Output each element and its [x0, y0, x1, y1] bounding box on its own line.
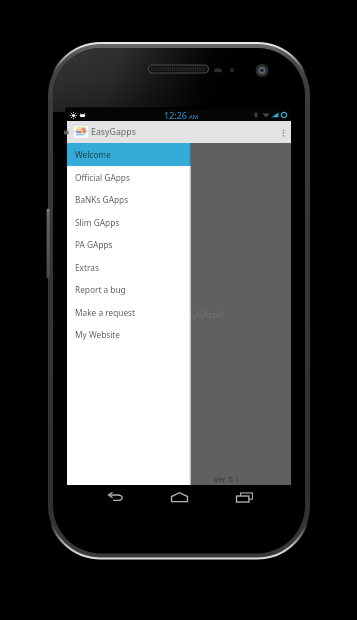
button[interactable]: My Website — [67, 323, 191, 346]
staticText: My Website — [75, 329, 121, 340]
staticText: AM — [189, 113, 199, 121]
staticText: EasyGapps — [91, 126, 136, 138]
staticText: Slim GApps — [75, 217, 120, 228]
staticText: Official GApps — [75, 172, 130, 183]
button[interactable]: Official GApps — [67, 166, 191, 188]
staticText: Welcome to EasyGApps! — [134, 309, 225, 320]
button[interactable]: More options — [276, 121, 291, 143]
staticText: Extras — [75, 262, 99, 273]
staticText: Welcome — [75, 149, 111, 160]
button[interactable]: Slim GApps — [67, 211, 191, 233]
staticText: PA GApps — [75, 239, 113, 250]
button[interactable]: Welcome — [67, 143, 191, 166]
staticText: 12:26 — [164, 109, 188, 121]
button[interactable]: Back — [98, 485, 132, 508]
button[interactable]: PA GApps — [67, 233, 191, 256]
staticText: Report a bug — [75, 284, 126, 295]
staticText: Ver. 0.1 — [214, 474, 240, 484]
staticText: Make a request — [75, 307, 136, 318]
button[interactable]: Home — [162, 485, 196, 508]
button[interactable]: Open navigation drawer — [67, 121, 73, 143]
button[interactable]: Report a bug — [67, 278, 191, 301]
button[interactable]: BaNKs GApps — [67, 188, 191, 211]
button[interactable]: Extras — [67, 256, 191, 278]
staticText: BaNKs GApps — [75, 194, 129, 205]
button[interactable]: Make a request — [67, 301, 191, 323]
button[interactable]: Recent apps — [227, 485, 261, 508]
